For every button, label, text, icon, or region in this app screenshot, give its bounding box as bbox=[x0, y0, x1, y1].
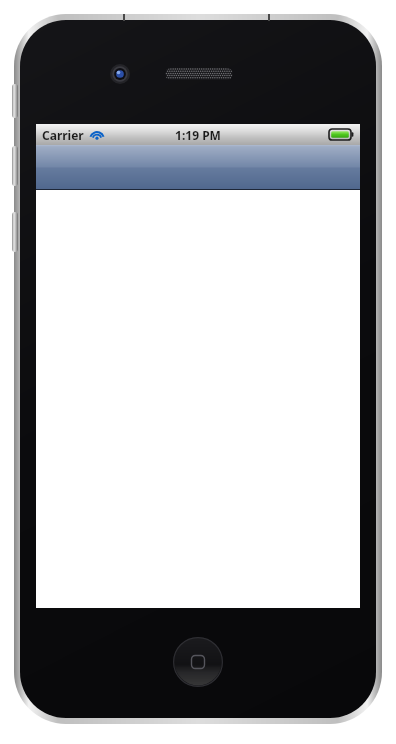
button[interactable]: Side button bbox=[12, 212, 18, 252]
staticText: Carrier bbox=[42, 127, 84, 143]
staticText: 1:19 PM bbox=[175, 127, 221, 143]
button[interactable]: Side button bbox=[12, 84, 18, 118]
button[interactable]: Side button bbox=[12, 146, 18, 186]
button[interactable] bbox=[36, 145, 360, 189]
button[interactable]: Home bbox=[173, 637, 223, 687]
